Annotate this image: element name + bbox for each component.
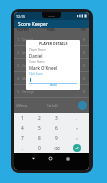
staticText: 0 — [38, 145, 41, 152]
staticText: Player Name — [29, 48, 46, 52]
button[interactable]: 3 — [48, 113, 65, 123]
button[interactable]: Recent apps — [64, 155, 71, 162]
button[interactable]: 2. Joseph — [14, 46, 89, 58]
button[interactable]: ADD — [26, 82, 80, 88]
button[interactable]: Hide keyboard — [30, 155, 37, 162]
staticText: 0 — [83, 76, 86, 81]
staticText: 7 — [21, 135, 24, 142]
staticText: . — [22, 145, 24, 152]
staticText: 5. George — [17, 89, 35, 94]
staticText: 0 — [83, 63, 86, 68]
staticText: Cat bulk — [47, 104, 58, 108]
staticText: PTS — [81, 28, 86, 32]
staticText: ADD — [50, 83, 57, 87]
button[interactable]: 4. Michael — [14, 72, 89, 84]
button[interactable]: 7 — [14, 133, 31, 143]
button[interactable]: = — [65, 133, 89, 143]
staticText: 2 — [38, 115, 41, 122]
button[interactable]: 8 — [31, 133, 48, 143]
button[interactable]: 1 — [14, 113, 31, 123]
staticText: 5 — [38, 125, 41, 132]
button[interactable]: Done — [65, 143, 89, 153]
button[interactable]: 5. George — [14, 85, 89, 97]
other: Done — [73, 144, 81, 152]
staticText: × — [76, 126, 79, 131]
staticText: - — [76, 116, 78, 121]
button[interactable]: Voice input — [78, 101, 87, 110]
staticText: 9 — [55, 135, 58, 142]
button[interactable]: Backspace — [48, 143, 65, 153]
staticText: 4. Michael — [17, 76, 35, 81]
staticText: TEAM — [47, 28, 55, 32]
button[interactable]: 9 — [48, 133, 65, 143]
staticText: 2. Joseph — [17, 50, 34, 55]
staticText: ⌫ — [54, 146, 60, 151]
staticText: Daniel — [29, 53, 43, 59]
staticText: 0 — [83, 50, 86, 55]
button[interactable]: 1. Daniel — [14, 33, 89, 45]
button[interactable]: 5 — [31, 123, 48, 133]
staticText: 3. Connor — [17, 63, 35, 68]
staticText: 6 — [55, 125, 58, 132]
staticText: = — [76, 136, 79, 141]
staticText: Score Keeper — [18, 21, 48, 28]
button[interactable]: 6 — [48, 123, 65, 133]
staticText: Team Name — [29, 60, 45, 64]
staticText: 1 — [21, 115, 24, 122]
staticText: Club Score — [29, 72, 43, 76]
staticText: PLAYER DETAILS — [39, 41, 68, 46]
staticText: 3 — [55, 115, 58, 122]
other: Backspace — [54, 146, 60, 151]
staticText: 4 Money — [16, 104, 28, 108]
staticText: 1. Daniel — [17, 37, 33, 42]
staticText: Mark O'Kneel — [29, 65, 58, 71]
staticText: 0 — [83, 89, 86, 94]
button[interactable]: 4 — [14, 123, 31, 133]
staticText: 8 — [38, 135, 41, 142]
staticText: 12:15 — [16, 14, 25, 19]
button[interactable]: 3. Connor — [14, 59, 89, 71]
button[interactable]: 0 — [31, 143, 48, 153]
staticText: 0 — [83, 37, 86, 42]
button[interactable]: . — [14, 143, 31, 153]
staticText: PLAYERS — [17, 28, 29, 32]
button[interactable]: × — [65, 123, 89, 133]
staticText: 4 — [21, 125, 24, 132]
button[interactable]: 2 — [31, 113, 48, 123]
button[interactable]: Home — [47, 155, 54, 162]
